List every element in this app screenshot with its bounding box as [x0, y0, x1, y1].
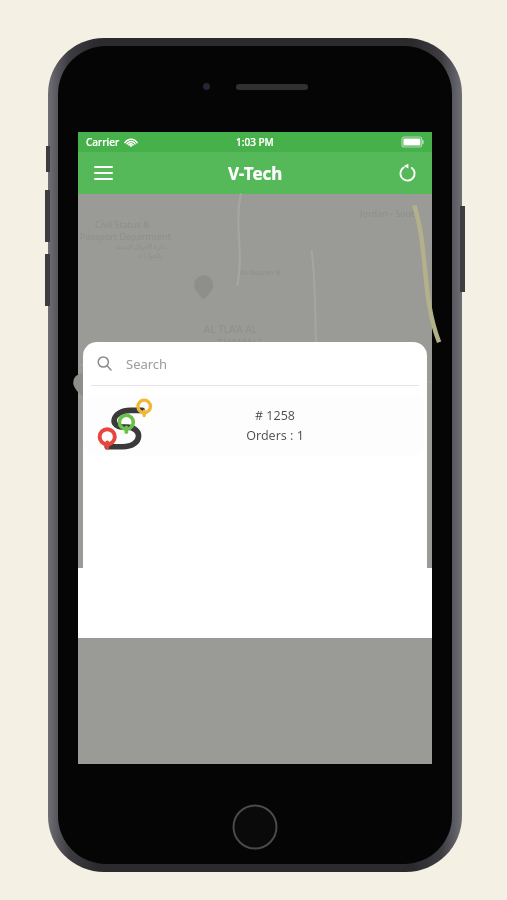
staticText: AL TLA'A AL	[204, 322, 257, 336]
staticText: 1:03 PM	[236, 135, 274, 149]
button[interactable]: Refresh	[390, 156, 424, 190]
staticText: Passport Department	[80, 230, 171, 242]
button[interactable]: Search	[83, 342, 427, 385]
staticText: Orders : 1	[246, 427, 304, 444]
button[interactable]: # 1258	[86, 395, 424, 456]
staticText: Search	[126, 355, 168, 373]
button[interactable]: Menu	[86, 156, 120, 190]
staticText: # 1258	[255, 407, 295, 424]
staticText: Jordan - Sout	[360, 207, 415, 219]
staticText: Carrier	[86, 135, 120, 149]
staticText: An-Nuqrah St	[240, 268, 282, 277]
staticText: SHAMALI	[218, 336, 262, 350]
staticText: V-Tech	[228, 162, 283, 185]
staticText: Civil Status &	[95, 218, 150, 230]
